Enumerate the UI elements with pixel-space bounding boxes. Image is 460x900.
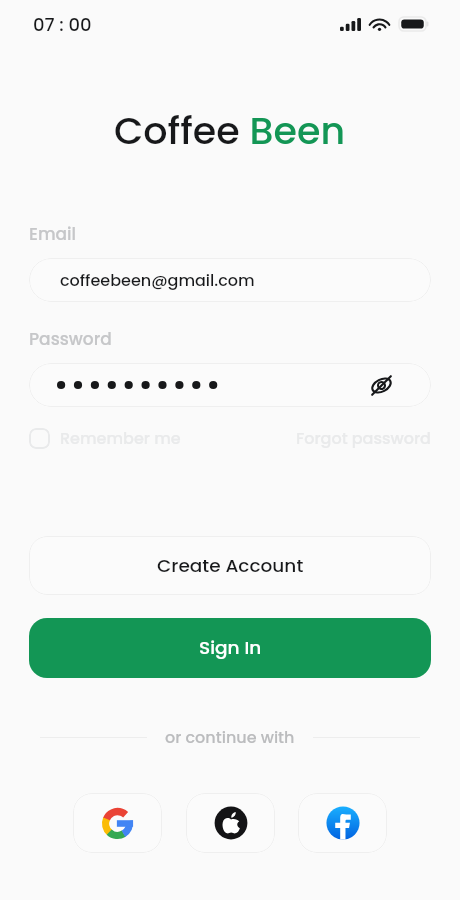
button[interactable]: Remember me [29, 427, 181, 449]
staticText: Password [29, 327, 112, 351]
staticText: Forgot password [296, 427, 431, 449]
button[interactable]: Create Account [29, 536, 431, 595]
staticText: Sign In [199, 635, 262, 661]
staticText: or continue with [165, 726, 295, 748]
staticText: Coffee Been [114, 104, 346, 157]
button[interactable]: Sign in with Google [73, 793, 162, 853]
button[interactable]: Show password [29, 363, 431, 407]
staticText: Create Account [157, 553, 304, 579]
staticText: 07 : 00 [33, 12, 92, 37]
staticText: Email [29, 222, 77, 246]
button[interactable]: Forgot password [296, 427, 431, 449]
button[interactable]: Sign In [29, 618, 431, 678]
staticText: Remember me [60, 427, 181, 449]
button[interactable]: Sign in with Apple [186, 793, 275, 853]
button[interactable]: Sign in with Facebook [298, 793, 387, 853]
button[interactable]: Show password [368, 372, 394, 398]
staticText: coffeebeen@gmail.com [60, 269, 255, 291]
button[interactable]: coffeebeen@gmail.com [29, 258, 431, 302]
